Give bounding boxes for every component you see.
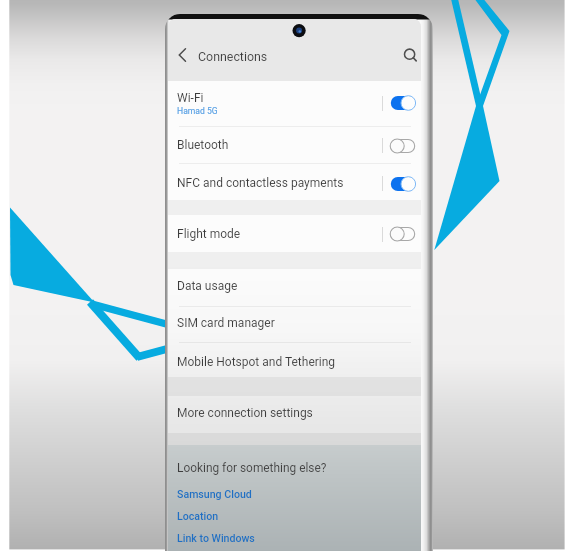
- button[interactable]: Turn on: [390, 226, 416, 242]
- button[interactable]: Turn on: [390, 138, 416, 154]
- button[interactable]: Search: [400, 44, 421, 66]
- button[interactable]: Back: [173, 42, 193, 68]
- button[interactable]: Link to Windows: [177, 532, 255, 544]
- staticText: Wi-Fi: [177, 91, 204, 105]
- staticText: Data usage: [177, 279, 238, 293]
- staticText: Hamad 5G: [177, 106, 218, 116]
- staticText: Looking for something else?: [177, 461, 327, 475]
- button[interactable]: Turn off: [390, 176, 416, 192]
- button[interactable]: Turn off: [390, 95, 416, 111]
- staticText: NFC and contactless payments: [177, 176, 344, 190]
- staticText: Mobile Hotspot and Tethering: [177, 355, 336, 369]
- button[interactable]: Location: [177, 510, 219, 522]
- staticText: Link to Windows: [177, 532, 255, 544]
- staticText: Flight mode: [177, 227, 241, 241]
- button[interactable]: Samsung Cloud: [177, 488, 252, 500]
- staticText: SIM card manager: [177, 316, 275, 330]
- staticText: Bluetooth: [177, 138, 229, 152]
- staticText: More connection settings: [177, 406, 313, 420]
- staticText: Connections: [198, 49, 268, 64]
- staticText: Samsung Cloud: [177, 488, 252, 500]
- staticText: Location: [177, 510, 219, 522]
